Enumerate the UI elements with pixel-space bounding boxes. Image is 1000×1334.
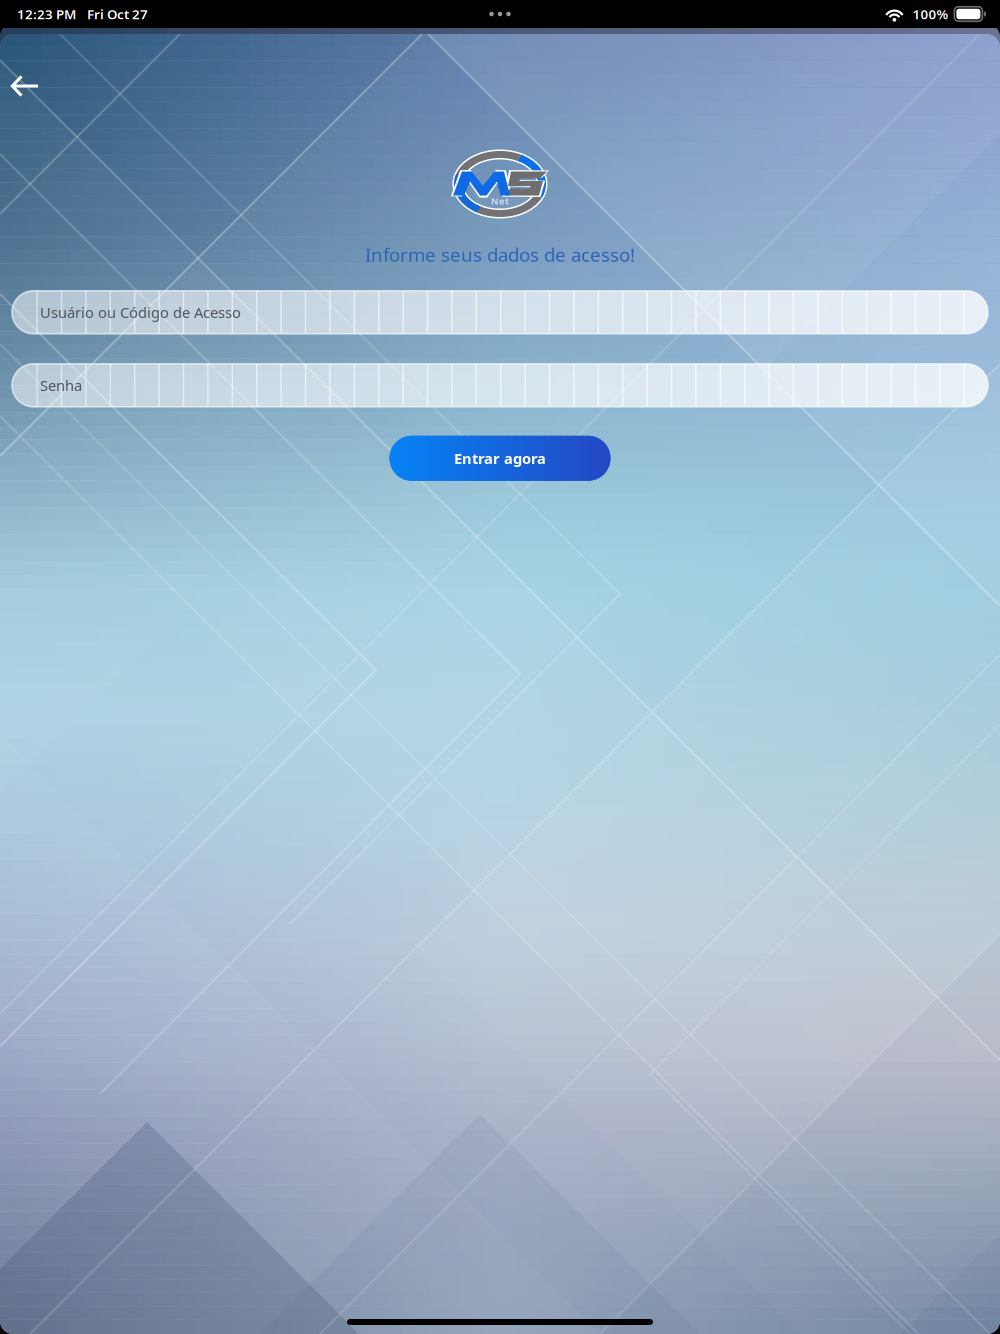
staticText: Net <box>491 195 509 207</box>
button[interactable]: Entrar agora <box>389 436 610 481</box>
button[interactable]: Usuário ou Código de Acesso <box>12 291 988 334</box>
button[interactable]: Back <box>0 63 50 109</box>
staticText: 12:23 PM <box>17 5 76 23</box>
staticText: Usuário ou Código de Acesso <box>40 303 241 322</box>
button[interactable]: Senha <box>12 364 988 407</box>
staticText: Fri Oct 27 <box>87 5 148 23</box>
staticText: Entrar agora <box>454 449 546 468</box>
staticText: 100% <box>912 5 948 23</box>
staticText: Senha <box>40 376 82 395</box>
staticText: Informe seus dados de acesso! <box>365 242 635 267</box>
